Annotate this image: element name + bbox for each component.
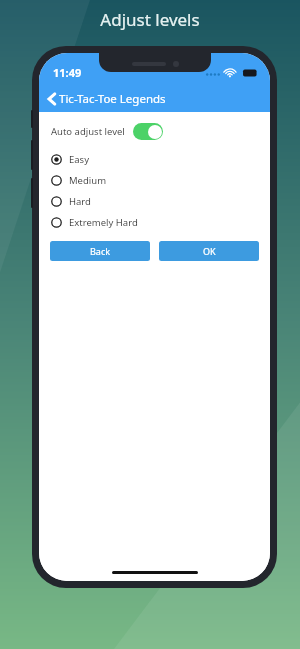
button[interactable]: Medium [39,170,270,191]
staticText: OK [203,245,216,257]
staticText: Easy [69,153,90,166]
button[interactable]: Auto adjust level [39,121,175,142]
staticText: Back [90,245,111,257]
button[interactable]: Easy [39,149,270,170]
button[interactable]: Extremely Hard [39,212,270,233]
button[interactable]: OK [159,241,259,261]
staticText: Hard [69,195,91,208]
staticText: Extremely Hard [69,216,138,229]
staticText: Auto adjust level [51,125,125,138]
staticText: Tic-Tac-Toe Legends [59,91,166,107]
staticText: Adjust levels [0,8,300,31]
button[interactable]: Back [50,241,150,261]
staticText: 11:49 [53,65,82,80]
button[interactable]: Hard [39,191,270,212]
staticText: Medium [69,174,107,187]
button[interactable]: Tic-Tac-Toe Legends [39,86,172,112]
